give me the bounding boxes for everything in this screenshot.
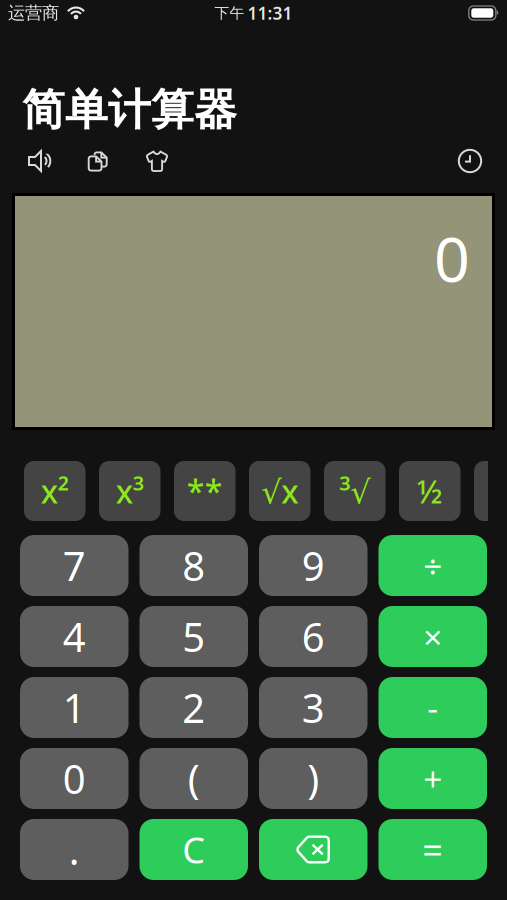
button[interactable]: ( [139, 748, 248, 809]
button[interactable]: √x [249, 461, 310, 521]
staticText: x² [41, 470, 69, 512]
staticText: = [422, 826, 443, 873]
staticText: ( [188, 752, 200, 805]
staticText: 0 [434, 216, 470, 299]
staticText: ) [307, 752, 319, 805]
staticText: x³ [116, 470, 144, 512]
button[interactable]: ³√ [324, 461, 385, 521]
button[interactable]: Copy [68, 140, 128, 182]
button[interactable]: ⅓ [474, 461, 507, 521]
staticText: ³√ [339, 470, 370, 512]
staticText: 7 [63, 539, 86, 592]
staticText: + [423, 756, 442, 801]
staticText: ** [187, 470, 223, 512]
button[interactable]: C [139, 819, 248, 880]
button[interactable]: x³ [99, 461, 160, 521]
button[interactable]: ½ [399, 461, 460, 521]
staticText: 2 [182, 681, 205, 734]
button[interactable]: 5 [139, 606, 248, 667]
staticText: 5 [182, 610, 205, 663]
staticText: ½ [417, 470, 443, 512]
button[interactable]: 7 [20, 535, 128, 596]
button[interactable]: ) [259, 748, 367, 809]
button[interactable]: 3 [259, 677, 367, 738]
staticText: 下午 [214, 4, 244, 22]
button[interactable]: Theme [128, 140, 186, 182]
staticText: . [69, 823, 80, 876]
staticText: 6 [302, 610, 325, 663]
staticText: 运营商 [8, 2, 59, 24]
staticText: C [182, 826, 205, 873]
button[interactable]: = [378, 819, 487, 880]
staticText: 8 [182, 539, 205, 592]
button[interactable]: + [378, 748, 487, 809]
button[interactable]: 4 [20, 606, 128, 667]
button[interactable]: 6 [259, 606, 367, 667]
button[interactable]: ÷ [378, 535, 487, 596]
button[interactable]: × [378, 606, 487, 667]
button[interactable]: Sound [10, 140, 68, 182]
staticText: 9 [302, 539, 325, 592]
button[interactable]: ** [174, 461, 235, 521]
button[interactable]: History [448, 140, 492, 182]
staticText: 11:31 [247, 1, 292, 24]
button[interactable]: x² [24, 461, 85, 521]
staticText: 3 [302, 681, 325, 734]
button[interactable]: 1 [20, 677, 128, 738]
staticText: 0 [63, 752, 86, 805]
staticText: √x [261, 470, 298, 512]
button[interactable]: . [20, 819, 128, 880]
button[interactable]: 2 [139, 677, 248, 738]
button[interactable]: 0 [20, 748, 128, 809]
staticText: ÷ [423, 543, 442, 588]
button[interactable]: 8 [139, 535, 248, 596]
staticText: 4 [63, 610, 86, 663]
staticText: 1 [63, 681, 86, 734]
button[interactable]: 9 [259, 535, 367, 596]
staticText: 简单计算器 [22, 84, 237, 136]
staticText: - [427, 685, 438, 730]
button[interactable]: - [378, 677, 487, 738]
staticText: × [423, 614, 442, 659]
button[interactable]: Delete [259, 819, 367, 880]
